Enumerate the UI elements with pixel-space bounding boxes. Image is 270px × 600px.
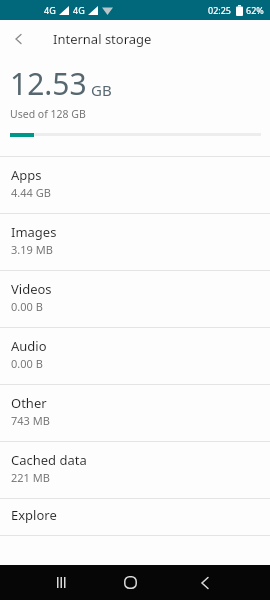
staticText: Used of 128 GB (10, 107, 86, 121)
staticText: 743 MB (11, 413, 50, 428)
staticText: 3.19 MB (11, 242, 53, 257)
button[interactable]: Audio (0, 328, 270, 384)
staticText: Internal storage (53, 30, 152, 48)
button[interactable]: Cached data (0, 442, 270, 498)
button[interactable] (36, 565, 86, 600)
staticText: 221 MB (11, 470, 50, 485)
button[interactable]: Explore (0, 499, 270, 535)
staticText: 12.53 (10, 63, 87, 104)
staticText: 62% (246, 4, 264, 16)
staticText: 4.44 GB (11, 185, 51, 200)
staticText: Videos (11, 280, 52, 298)
staticText: 4G (44, 4, 56, 16)
staticText: Cached data (11, 451, 87, 469)
staticText: Other (11, 394, 47, 412)
staticText: 0.00 B (11, 356, 43, 371)
staticText: GB (91, 80, 112, 100)
button[interactable]: Apps (0, 157, 270, 213)
button[interactable] (0, 20, 37, 57)
button[interactable]: Videos (0, 271, 270, 327)
button[interactable] (180, 565, 230, 600)
button[interactable] (105, 565, 155, 600)
staticText: Audio (11, 337, 47, 355)
staticText: Images (11, 223, 57, 241)
staticText: 4G (73, 4, 85, 16)
staticText: 02:25 (208, 4, 232, 16)
staticText: Apps (11, 166, 42, 184)
button[interactable]: Images (0, 214, 270, 270)
button[interactable]: Other (0, 385, 270, 441)
staticText: Explore (11, 506, 57, 524)
staticText: 0.00 B (11, 299, 43, 314)
